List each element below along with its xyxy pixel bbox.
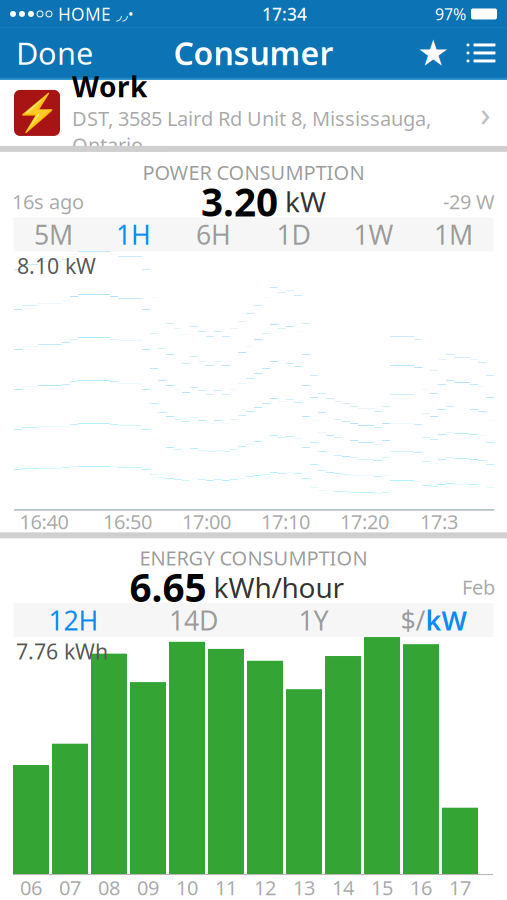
button[interactable]: 14D [133, 603, 253, 637]
staticText: $/ [400, 602, 425, 638]
button[interactable]: 1W [333, 217, 413, 251]
staticText: 16:40 [19, 508, 68, 535]
staticText: -29 W [443, 188, 495, 215]
staticText: 97% [435, 3, 466, 24]
staticText: 1M [434, 217, 473, 252]
staticText: 8.10 kW [17, 251, 96, 280]
button[interactable]: 1D [253, 217, 333, 251]
staticText: 06 [20, 874, 42, 900]
staticText: 17:3 [420, 508, 458, 535]
button[interactable]: List [455, 28, 507, 78]
staticText: 17 [449, 874, 471, 900]
staticText: Consumer [173, 32, 333, 74]
staticText: 15 [371, 874, 393, 900]
staticText: DST, 3585 Laird Rd Unit 8, Mississauga, … [72, 105, 431, 158]
staticText: 6H [196, 217, 231, 252]
staticText: Done [16, 33, 93, 73]
staticText: 1H [116, 217, 151, 252]
button[interactable]: $/ [373, 603, 493, 637]
staticText: 13 [293, 874, 315, 900]
staticText: 14 [332, 874, 354, 900]
staticText: 14D [169, 602, 218, 638]
staticText: Feb [462, 574, 495, 600]
staticText: 1Y [298, 602, 328, 638]
staticText: kWh/hour [206, 568, 344, 606]
staticText: 10 [176, 874, 198, 900]
button[interactable]: Favorite [411, 28, 455, 78]
staticText: 07 [59, 874, 81, 900]
staticText: kW [278, 183, 326, 220]
staticText: 7.76 kWh [16, 637, 108, 665]
button[interactable]: 1M [413, 217, 493, 251]
staticText: 17:00 [182, 508, 231, 535]
staticText: › [480, 90, 491, 136]
staticText: 17:34 [262, 2, 307, 25]
staticText: ⚡ [14, 92, 59, 133]
staticText: 1D [276, 217, 310, 252]
staticText: ★ [417, 32, 449, 73]
staticText: 3.20 [201, 176, 278, 227]
staticText: 5M [34, 217, 73, 252]
staticText: HOME [58, 2, 111, 25]
button[interactable]: 1Y [253, 603, 373, 637]
staticText: 12H [48, 602, 98, 638]
staticText: 6.65 [129, 561, 206, 613]
button[interactable]: Done [0, 28, 109, 78]
staticText: ◞◞• [116, 4, 134, 24]
staticText: 16 [410, 874, 432, 900]
button[interactable]: 5M [13, 217, 93, 251]
button[interactable]: 1H [93, 217, 173, 251]
button[interactable]: ⚡ [0, 80, 507, 146]
staticText: 16:50 [103, 508, 152, 535]
staticText: ENERGY CONSUMPTION [139, 544, 367, 571]
staticText: 1W [353, 217, 393, 252]
button[interactable]: 12H [13, 603, 133, 637]
staticText: 17:20 [340, 508, 389, 535]
staticText: 09 [137, 874, 159, 900]
staticText: 12 [254, 874, 276, 900]
staticText: Work [72, 68, 147, 105]
staticText: 11 [215, 874, 237, 900]
staticText: 17:10 [261, 508, 310, 535]
staticText: POWER CONSUMPTION [142, 159, 364, 185]
staticText: kW [425, 602, 466, 638]
button[interactable]: 6H [173, 217, 253, 251]
staticText: 16s ago [12, 188, 84, 215]
staticText: 08 [98, 874, 120, 900]
